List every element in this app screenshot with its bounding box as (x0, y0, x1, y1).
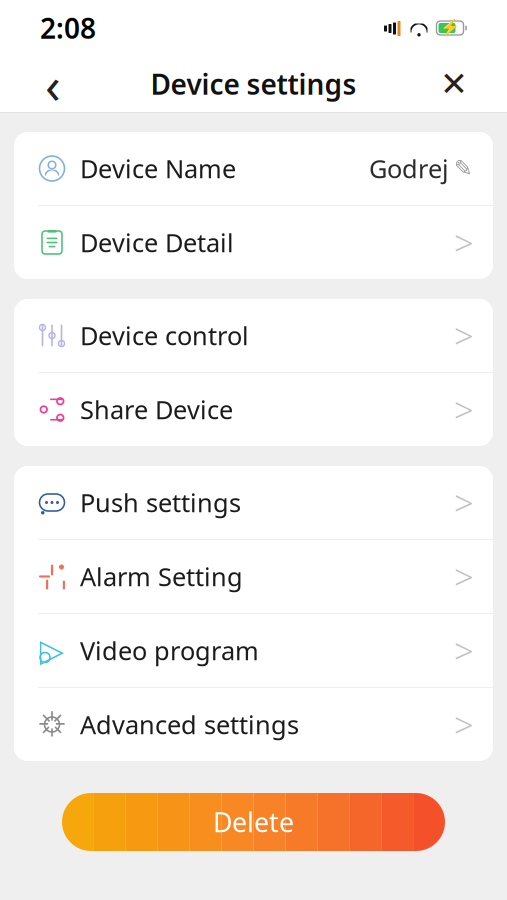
button[interactable]: Close (427, 57, 481, 111)
staticText: Device settings (150, 65, 356, 103)
staticText: > (454, 386, 474, 432)
staticText: > (454, 701, 474, 747)
staticText: Share Device (80, 393, 233, 426)
staticText: Device control (80, 319, 249, 352)
staticText: ‹ (45, 50, 61, 118)
staticText: ▷ (39, 632, 64, 669)
button[interactable]: Push settings (14, 466, 493, 539)
staticText: ✳ (37, 705, 66, 744)
staticText: ✕ (440, 65, 468, 103)
staticText: > (454, 219, 474, 265)
staticText: Push settings (80, 486, 241, 519)
staticText: > (454, 312, 474, 358)
button[interactable]: Alarm Setting (14, 540, 493, 613)
staticText: > (454, 627, 474, 673)
button[interactable]: Device control (14, 299, 493, 372)
button[interactable]: Device Name (14, 132, 493, 205)
staticText: ✎ (454, 156, 473, 181)
button[interactable]: Delete (62, 793, 445, 851)
staticText: ⚡ (440, 19, 460, 37)
staticText: Device Name (80, 152, 236, 185)
button[interactable]: ▷ (14, 614, 493, 687)
staticText: Advanced settings (80, 708, 299, 741)
staticText: Device Detail (80, 226, 234, 259)
staticText: Alarm Setting (80, 560, 243, 593)
staticText: Video program (80, 634, 259, 667)
staticText: Godrej (369, 152, 449, 185)
button[interactable]: Back (26, 57, 80, 111)
staticText: 2:08 (40, 9, 96, 47)
staticText: > (454, 553, 474, 599)
button[interactable]: ✳ (14, 688, 493, 761)
button[interactable]: Share Device (14, 373, 493, 446)
button[interactable]: Device Detail (14, 206, 493, 279)
staticText: Delete (213, 804, 294, 840)
staticText: > (454, 479, 474, 525)
